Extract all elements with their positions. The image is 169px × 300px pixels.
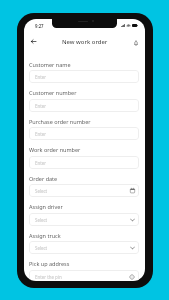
button[interactable]: Enter the pin	[29, 270, 139, 281]
staticText: Order date	[29, 175, 58, 182]
staticText: Assign driver	[29, 203, 63, 210]
staticText: Select	[35, 188, 48, 194]
staticText: 9:27	[35, 23, 44, 29]
button[interactable]: Select	[29, 184, 139, 197]
button[interactable]: Enter	[29, 156, 139, 169]
button[interactable]: Select	[29, 213, 139, 226]
staticText: Enter	[35, 131, 47, 137]
staticText: Assign truck	[29, 232, 61, 239]
button[interactable]: Enter	[29, 70, 139, 83]
button[interactable]: Select	[29, 241, 139, 254]
staticText: Enter	[35, 160, 47, 166]
staticText: Enter	[35, 74, 47, 80]
staticText: New work order	[62, 38, 108, 46]
staticText: Select	[35, 245, 48, 251]
staticText: Enter	[35, 103, 47, 109]
staticText: Customer number	[29, 89, 77, 96]
staticText: Purchase order number	[29, 118, 91, 125]
staticText: Work order number	[29, 146, 81, 153]
button[interactable]: Back	[27, 35, 40, 48]
staticText: Enter the pin	[35, 274, 62, 280]
button[interactable]: Enter	[29, 127, 139, 140]
staticText: Customer name	[29, 61, 71, 68]
staticText: Pick up address	[29, 260, 70, 267]
staticText: Select	[35, 217, 48, 223]
button[interactable]: Enter	[29, 99, 139, 112]
button[interactable]: Notifications	[129, 36, 142, 49]
